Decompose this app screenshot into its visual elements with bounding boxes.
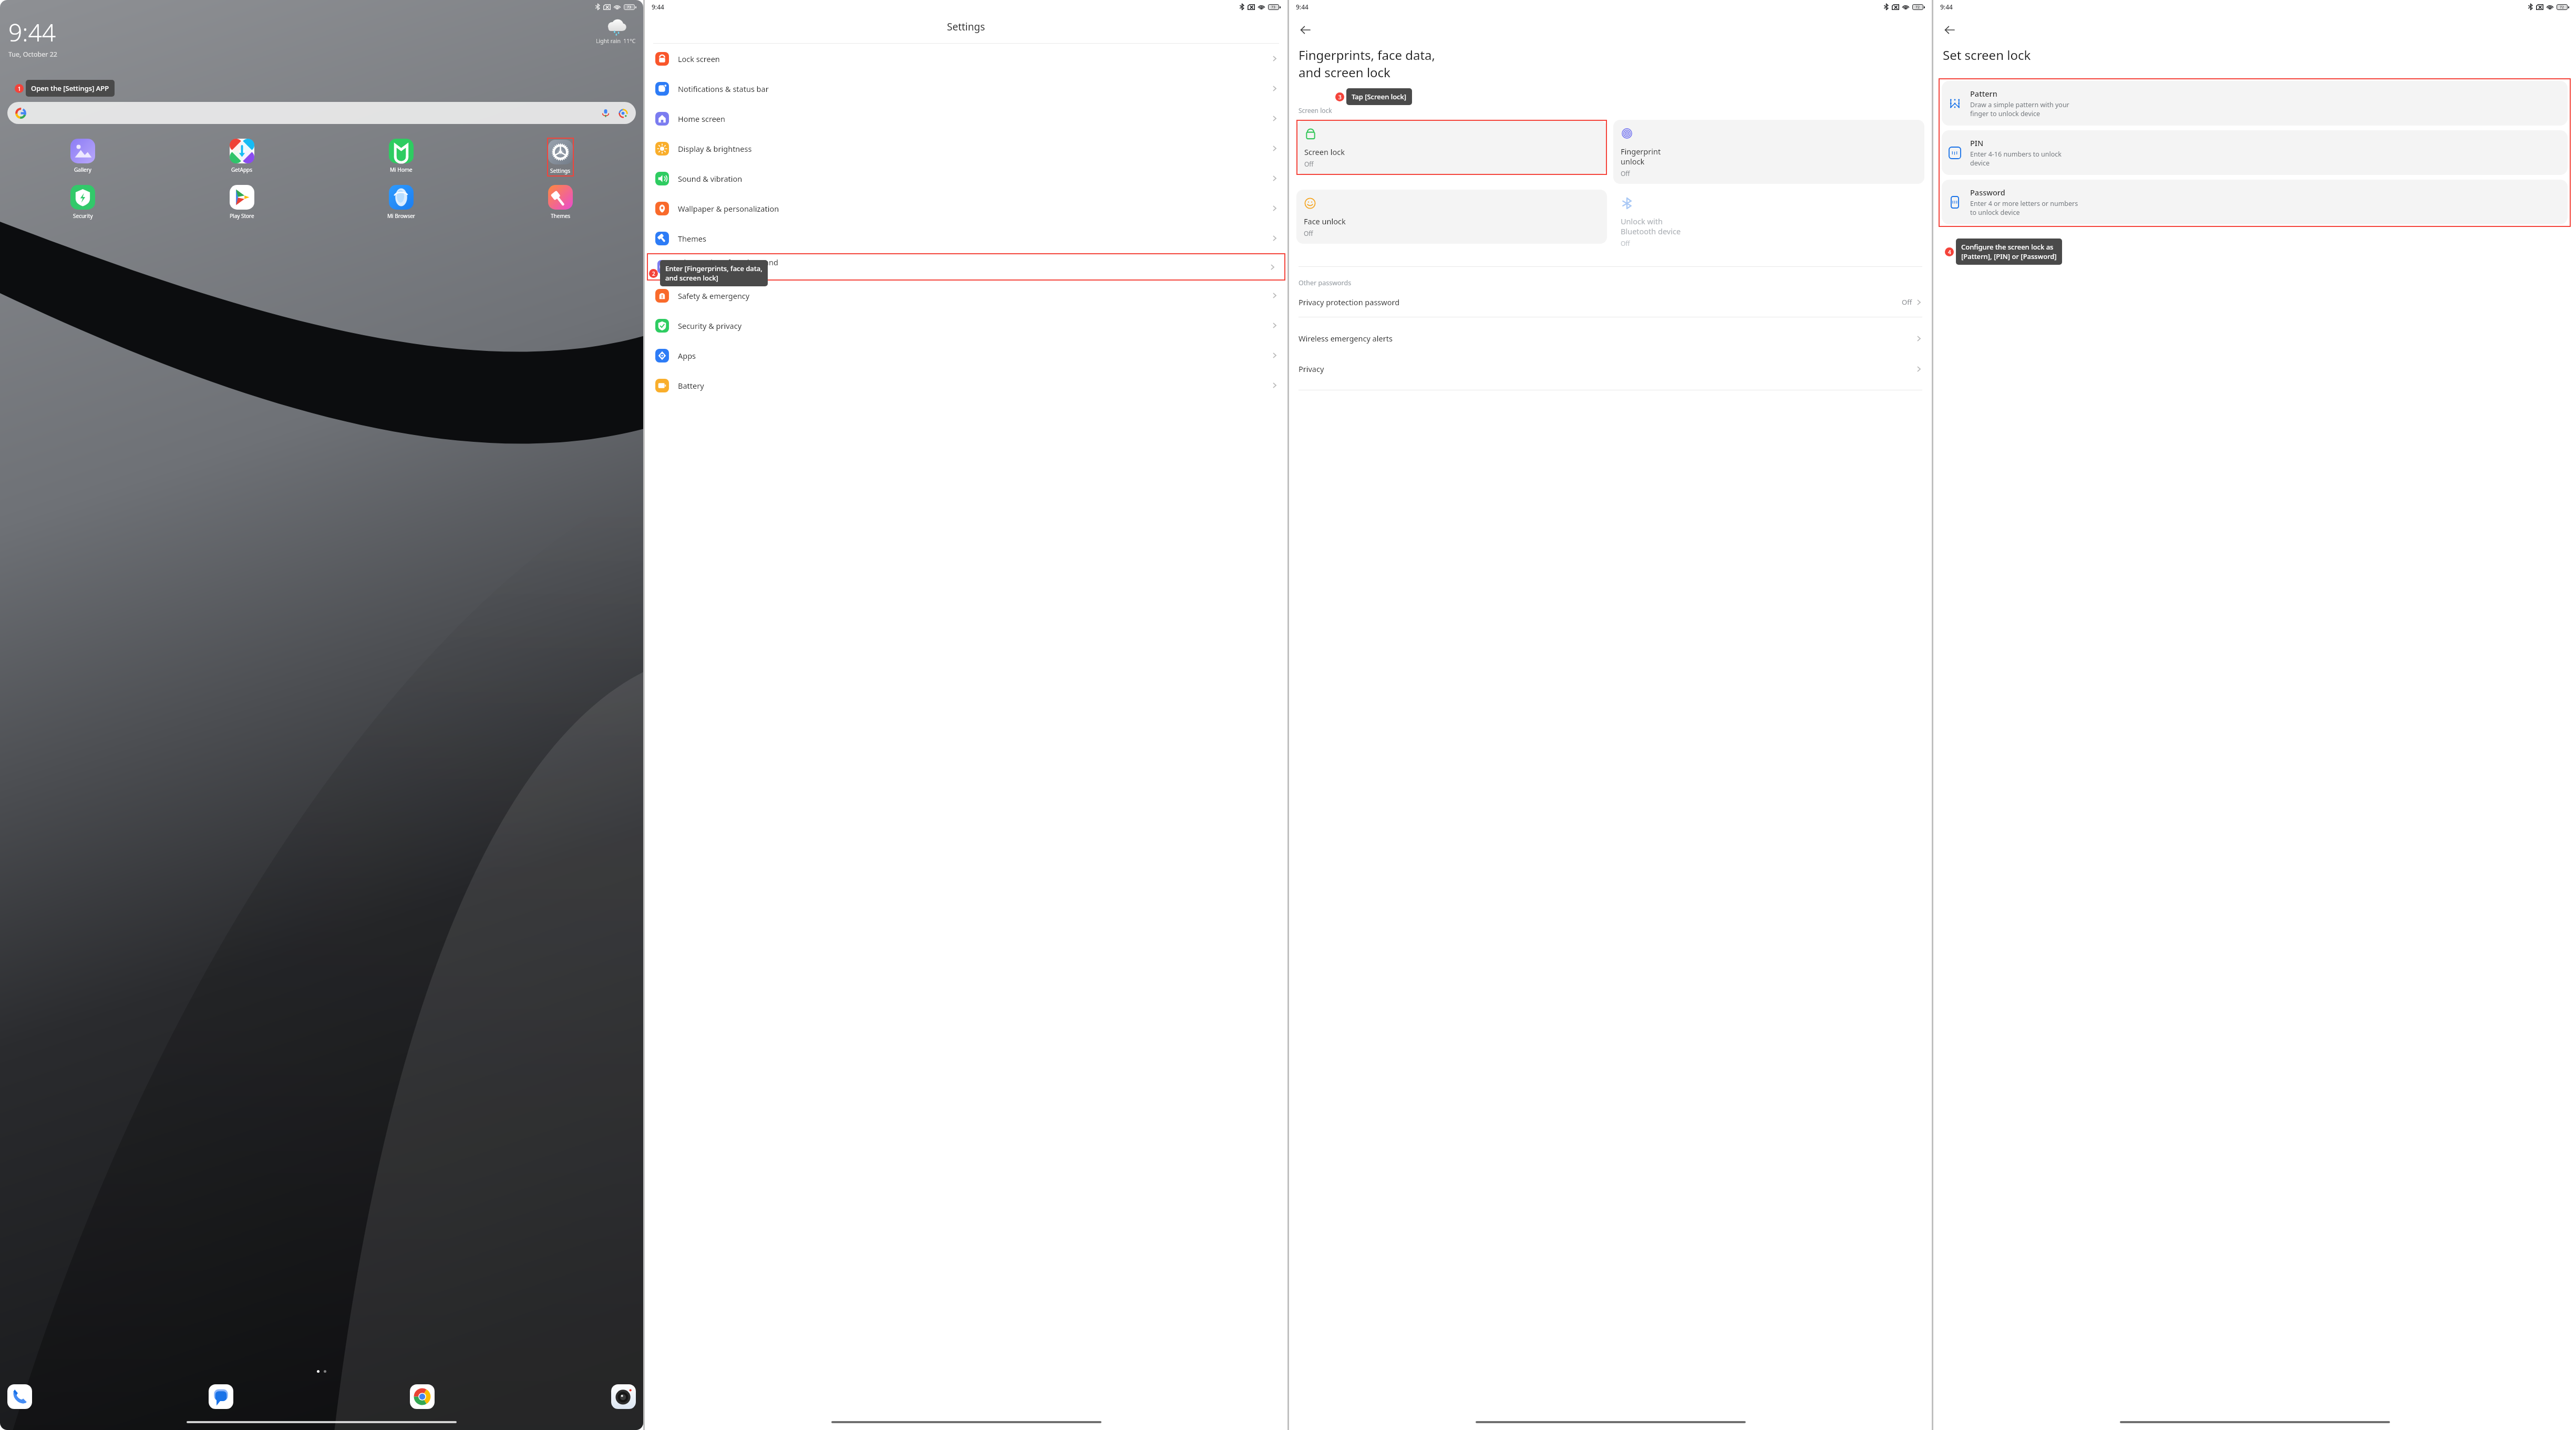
staticText: 9:44	[1296, 3, 1308, 11]
staticText: Enter [Fingerprints, face data, and scre…	[665, 264, 763, 283]
button[interactable]: Home screen	[645, 103, 1287, 133]
staticText: Off	[1304, 160, 1314, 168]
button[interactable]: Google search	[7, 102, 636, 124]
button[interactable]: Gallery	[3, 138, 162, 174]
staticText: 73	[1271, 5, 1276, 9]
staticText: PIN	[1970, 138, 1984, 148]
button[interactable]: Fingerprint unlock	[1613, 120, 1924, 184]
button[interactable]: Screen lock	[1297, 120, 1606, 174]
button[interactable]: Privacy protection password	[1289, 297, 1932, 307]
button[interactable]: Pattern	[1942, 81, 2568, 126]
staticText: Fingerprints, face data, and screen lock	[1299, 46, 1436, 81]
staticText: Screen lock	[1304, 147, 1345, 157]
staticText: Play Store	[230, 212, 254, 220]
staticText: Off	[1621, 169, 1630, 178]
button[interactable]: Apps	[645, 340, 1287, 370]
button[interactable]: Wallpaper & personalization	[645, 193, 1287, 223]
staticText: 73	[627, 5, 632, 9]
staticText: 9:44	[1940, 3, 1953, 11]
staticText: Settings	[550, 167, 571, 174]
staticText: Security	[73, 212, 93, 220]
staticText: Fingerprints, face data, and screen lock	[680, 257, 1269, 277]
staticText: 72	[1915, 5, 1920, 9]
staticText: Battery	[678, 380, 1271, 391]
other: Google search	[16, 108, 26, 118]
staticText: 9:44	[8, 16, 56, 49]
button[interactable]: Unlock with Bluetooth device	[1613, 190, 1924, 254]
staticText: Configure the screen lock as [Pattern], …	[1961, 242, 2057, 261]
button[interactable]: Settings	[548, 139, 573, 175]
button[interactable]: Security	[3, 184, 162, 221]
button[interactable]: Phone	[7, 1384, 32, 1409]
staticText: Privacy	[1299, 364, 1915, 374]
staticText: 72	[2560, 5, 2564, 9]
staticText: Open the [Settings] APP	[31, 84, 109, 93]
staticText: Sound & vibration	[678, 173, 1271, 184]
staticText: Tap [Screen lock]	[1352, 92, 1407, 101]
staticText: Screen lock	[1299, 106, 1332, 115]
staticText: Off	[1304, 229, 1313, 237]
staticText: Enter 4 or more letters or numbers to un…	[1970, 199, 2078, 217]
staticText: 4	[1948, 248, 1951, 256]
staticText: Mi Browser	[387, 212, 415, 220]
button[interactable]: Battery	[645, 370, 1287, 400]
staticText: Tue, October 22	[8, 50, 57, 59]
staticText: Set screen lock	[1943, 46, 2031, 64]
staticText: Face unlock	[1304, 216, 1346, 226]
button[interactable]: Fingerprints, face data, and screen lock	[647, 253, 1285, 281]
other: Google Lens	[619, 109, 627, 118]
staticText: GetApps	[231, 166, 253, 173]
staticText: Settings	[947, 20, 985, 34]
staticText: 1	[18, 85, 21, 92]
button[interactable]: Safety & emergency	[645, 281, 1287, 310]
button[interactable]: PIN	[1942, 130, 2568, 175]
button[interactable]: Password	[1942, 180, 2568, 224]
staticText: Lock screen	[678, 54, 1271, 64]
button[interactable]: Themes	[645, 223, 1287, 253]
staticText: Light rain 11°C	[596, 37, 636, 45]
staticText: Wireless emergency alerts	[1299, 333, 1915, 344]
button[interactable]: Face unlock	[1296, 190, 1607, 244]
staticText: Safety & emergency	[678, 291, 1271, 301]
button[interactable]: Wireless emergency alerts	[1289, 327, 1932, 350]
staticText: Wallpaper & personalization	[678, 203, 1271, 214]
staticText: Apps	[678, 350, 1271, 361]
button[interactable]: Privacy	[1289, 357, 1932, 380]
button[interactable]: Chrome	[410, 1384, 435, 1409]
staticText: Themes	[678, 233, 1271, 244]
staticText: Password	[1970, 187, 2005, 198]
staticText: Off	[1902, 297, 1912, 307]
staticText: 2	[652, 270, 655, 277]
button[interactable]: Themes	[481, 184, 640, 221]
staticText: Home screen	[678, 113, 1271, 124]
staticText: Pattern	[1970, 88, 1997, 99]
button[interactable]: Mi Home	[322, 138, 481, 174]
staticText: Display & brightness	[678, 143, 1271, 154]
button[interactable]: Security & privacy	[645, 310, 1287, 340]
staticText: Enter 4-16 numbers to unlock device	[1970, 150, 2062, 168]
staticText: Draw a simple pattern with your finger t…	[1970, 100, 2069, 118]
staticText: Unlock with Bluetooth device	[1621, 216, 1681, 236]
staticText: Themes	[551, 212, 571, 220]
staticText: Privacy protection password	[1299, 297, 1902, 307]
staticText: 9:44	[652, 3, 664, 11]
staticText: Fingerprint unlock	[1621, 146, 1661, 167]
staticText: Notifications & status bar	[678, 84, 1271, 94]
button[interactable]: Mi Browser	[322, 184, 481, 221]
staticText: Other passwords	[1299, 278, 1352, 287]
staticText: Mi Home	[390, 166, 413, 173]
staticText: Off	[1621, 239, 1630, 247]
button[interactable]: Back	[1296, 21, 1314, 39]
button[interactable]: Camera	[611, 1384, 636, 1409]
button[interactable]: Notifications & status bar	[645, 74, 1287, 103]
staticText: Security & privacy	[678, 320, 1271, 331]
button[interactable]: Messages	[209, 1384, 233, 1409]
other: Voice search	[602, 109, 610, 117]
button[interactable]: GetApps	[162, 138, 322, 174]
button[interactable]: Play Store	[162, 184, 322, 221]
button[interactable]: Back	[1941, 21, 1959, 39]
button[interactable]: Display & brightness	[645, 133, 1287, 163]
staticText: 3	[1338, 94, 1342, 101]
button[interactable]: Lock screen	[645, 44, 1287, 74]
button[interactable]: Sound & vibration	[645, 163, 1287, 193]
